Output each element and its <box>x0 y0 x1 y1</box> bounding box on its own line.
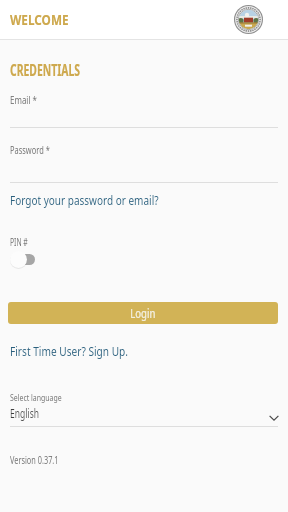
staticText: Select language <box>10 391 62 404</box>
button[interactable] <box>234 5 263 34</box>
button[interactable]: English <box>0 403 288 423</box>
staticText: English <box>10 405 39 421</box>
staticText: CREDENTIALS <box>10 58 81 80</box>
staticText: Login <box>130 305 156 321</box>
button[interactable]: First Time User? Sign Up. <box>0 0 146 17</box>
staticText: Password * <box>10 143 50 157</box>
button[interactable]: Forgot your password or email? <box>0 0 186 17</box>
staticText: Email * <box>10 93 37 107</box>
button[interactable] <box>10 251 36 269</box>
staticText: WELCOME <box>10 10 69 29</box>
staticText: Version 0.37.1 <box>10 453 59 467</box>
button[interactable]: Login <box>8 302 278 324</box>
staticText: PIN # <box>10 235 28 249</box>
